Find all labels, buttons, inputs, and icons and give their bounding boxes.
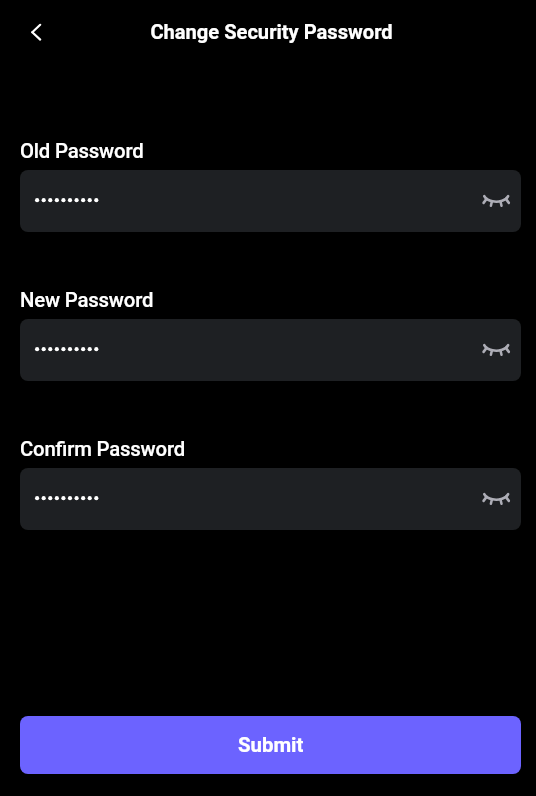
button[interactable]: Show password <box>20 319 521 381</box>
staticText: Change Security Password <box>150 20 393 44</box>
button[interactable]: Show password <box>474 477 518 521</box>
staticText: Submit <box>238 733 304 757</box>
button[interactable]: Show password <box>474 328 518 372</box>
button[interactable]: Show password <box>474 179 518 223</box>
button[interactable]: Show password <box>20 170 521 232</box>
staticText: New Password <box>20 288 154 312</box>
staticText: Confirm Password <box>20 437 185 461</box>
button[interactable]: Show password <box>20 468 521 530</box>
button[interactable]: Back <box>12 8 60 56</box>
staticText: Old Password <box>20 139 144 163</box>
button[interactable]: Submit <box>20 716 521 774</box>
